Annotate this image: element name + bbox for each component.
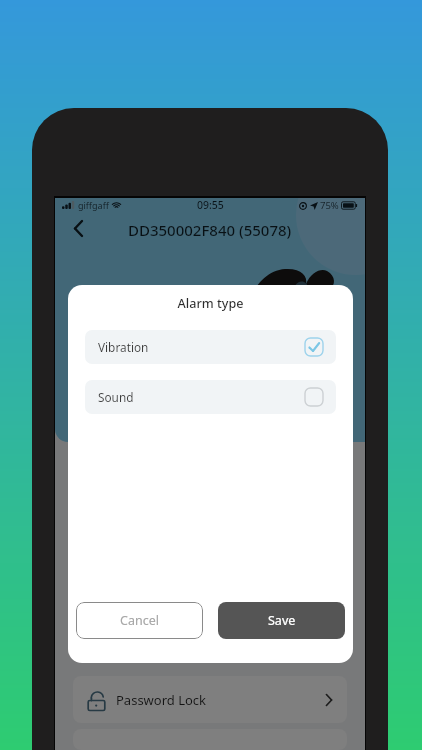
staticText: Cancel bbox=[120, 612, 159, 629]
staticText: Sound bbox=[98, 389, 134, 405]
staticText: Vibration bbox=[98, 339, 149, 355]
button[interactable]: Sound bbox=[85, 380, 336, 414]
staticText: Password Lock bbox=[116, 691, 207, 709]
button[interactable]: Cancel bbox=[76, 602, 203, 639]
button[interactable]: Save bbox=[218, 602, 345, 639]
staticText: giffgaff bbox=[78, 199, 109, 211]
button[interactable]: Vibration bbox=[85, 330, 336, 364]
staticText: 75% bbox=[320, 199, 339, 212]
staticText: Alarm type bbox=[68, 295, 353, 312]
staticText: DD350002F840 (55078) bbox=[128, 220, 292, 240]
button[interactable]: Password Lock bbox=[73, 676, 347, 723]
staticText: Save bbox=[268, 612, 296, 629]
button[interactable]: Back bbox=[65, 215, 91, 241]
staticText: 09:55 bbox=[197, 198, 224, 212]
